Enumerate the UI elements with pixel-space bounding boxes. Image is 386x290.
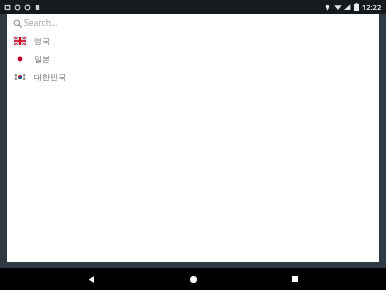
staticText: 12:22 <box>362 2 382 12</box>
staticText: 영국 <box>34 36 50 46</box>
staticText: 대한민국 <box>34 72 66 82</box>
button[interactable]: Home <box>182 268 204 290</box>
button[interactable]: Back <box>80 268 102 290</box>
button[interactable]: Search <box>7 14 379 32</box>
staticText: 일본 <box>34 54 50 64</box>
other: Search <box>13 19 22 28</box>
button[interactable]: Recent apps <box>284 268 306 290</box>
button[interactable]: 일본 <box>7 50 379 68</box>
staticText: Search... <box>24 17 58 29</box>
button[interactable]: 대한민국 <box>7 68 379 86</box>
button[interactable]: 영국 <box>7 32 379 50</box>
